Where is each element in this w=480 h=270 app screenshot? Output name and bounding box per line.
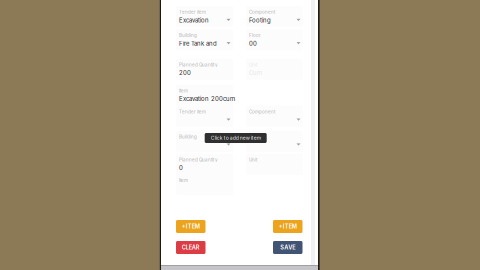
staticText: Footing [249, 17, 271, 24]
button[interactable]: Unit [246, 154, 303, 175]
button[interactable]: +ITEM [273, 220, 302, 233]
staticText: Item [179, 177, 188, 183]
staticText: Fire Tank and [179, 40, 217, 47]
button[interactable]: Tender item [176, 106, 233, 127]
staticText: SAVE [280, 244, 295, 251]
staticText: Cum [249, 69, 262, 76]
button[interactable]: Building [176, 29, 233, 50]
button[interactable]: Planned Quantity [176, 154, 233, 175]
button[interactable]: Planned Quantity [176, 59, 233, 80]
button[interactable]: +ITEM [176, 220, 205, 233]
staticText: Excavation 200cum [179, 95, 235, 103]
button[interactable]: Building [176, 131, 233, 152]
button[interactable]: Component [246, 106, 303, 127]
button[interactable]: Item [176, 85, 303, 106]
button[interactable]: Tender item [176, 6, 233, 27]
staticText: +ITEM [182, 223, 200, 230]
staticText: Floor [249, 33, 261, 38]
staticText: Click to add new item [211, 135, 261, 141]
staticText: Component [249, 109, 275, 115]
staticText: Tender item [179, 109, 206, 115]
staticText: Building [179, 33, 197, 38]
staticText: Planned Quantity [179, 157, 218, 162]
staticText: +ITEM [279, 223, 297, 230]
button[interactable]: Item [176, 174, 303, 195]
staticText: Tender item [179, 9, 206, 15]
button[interactable]: CLEAR [176, 241, 205, 254]
button[interactable]: SAVE [273, 241, 302, 254]
staticText: Component [249, 9, 275, 15]
staticText: Floor [249, 134, 261, 139]
button[interactable]: Component [246, 6, 303, 27]
staticText: Unit [249, 62, 257, 67]
staticText: Planned Quantity [179, 62, 218, 67]
staticText: CLEAR [182, 244, 200, 251]
button[interactable]: Floor [246, 29, 303, 50]
staticText: Unit [249, 157, 257, 162]
staticText: Building [179, 134, 197, 139]
staticText: 0 [179, 164, 183, 171]
button[interactable]: Floor [246, 131, 303, 152]
staticText: 00 [249, 40, 257, 47]
staticText: Excavation [179, 17, 209, 24]
staticText: 200 [179, 69, 191, 76]
staticText: Item [179, 88, 188, 94]
